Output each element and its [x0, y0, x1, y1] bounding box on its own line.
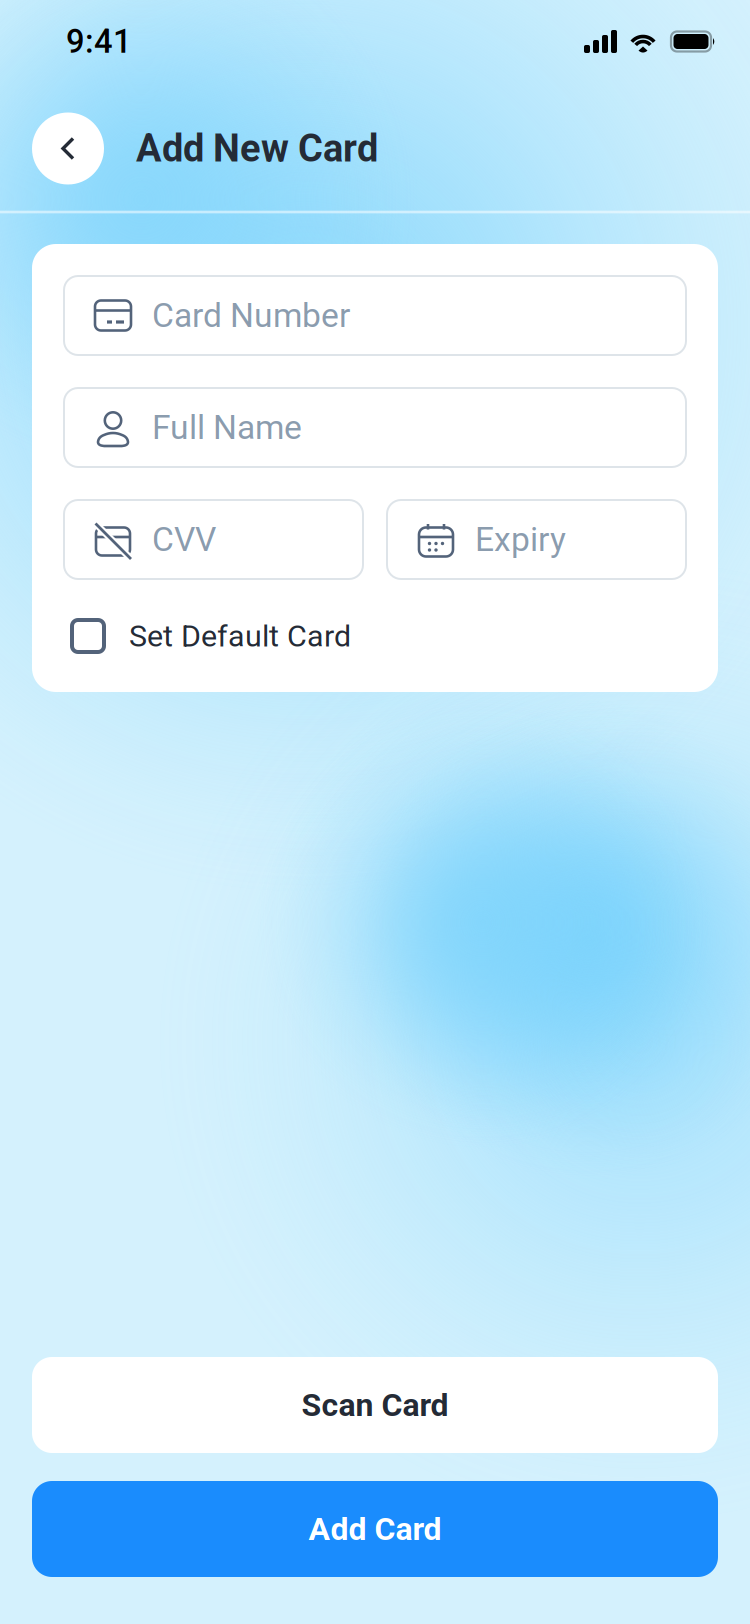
- staticText: CVV: [152, 520, 216, 559]
- staticText: Full Name: [152, 408, 302, 447]
- button[interactable]: Add Card: [32, 1481, 718, 1577]
- button[interactable]: Full Name: [64, 388, 686, 467]
- button[interactable]: Expiry: [387, 500, 686, 579]
- button[interactable]: Card Number: [64, 276, 686, 355]
- staticText: Add Card: [308, 1510, 441, 1548]
- staticText: Add New Card: [136, 126, 378, 171]
- staticText: Set Default Card: [129, 618, 351, 654]
- button[interactable]: Set Default Card: [64, 618, 686, 654]
- staticText: 9:41: [66, 22, 132, 61]
- button[interactable]: CVV: [64, 500, 363, 579]
- staticText: Card Number: [152, 296, 350, 335]
- button[interactable]: Scan Card: [32, 1357, 718, 1453]
- staticText: Scan Card: [301, 1386, 448, 1424]
- button[interactable]: Back: [32, 112, 104, 184]
- staticText: Expiry: [475, 520, 566, 559]
